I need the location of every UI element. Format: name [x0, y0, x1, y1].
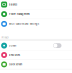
- staticText: Privacy: [1, 36, 8, 39]
- staticText: Resources: [9, 53, 20, 57]
- button[interactable]: Power management: [0, 9, 72, 19]
- staticText: Power management: [9, 13, 30, 16]
- button[interactable]: Screen: [0, 41, 72, 50]
- staticText: Balance: [9, 3, 17, 6]
- button[interactable]: Quick screen: [0, 60, 72, 69]
- staticText: Quick screen: [9, 63, 22, 66]
- button[interactable]: Resources: [0, 50, 72, 59]
- button[interactable]: MIUI customized settings: [0, 19, 72, 29]
- button[interactable]: Balance: [0, 0, 72, 9]
- staticText: MIUI customized settings: [9, 22, 39, 25]
- staticText: Screen: [9, 44, 16, 47]
